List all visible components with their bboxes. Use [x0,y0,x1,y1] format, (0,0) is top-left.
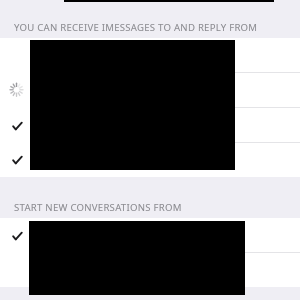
other: Verifying [6,80,28,102]
button[interactable]: Address verifying [0,73,300,108]
button[interactable]: Apple ID address [0,38,300,73]
button[interactable]: Email address [0,253,300,287]
other: Enabled [6,225,28,247]
staticText: YOU CAN RECEIVE IMESSAGES TO AND REPLY F… [14,21,258,34]
button[interactable]: Phone number, enabled [0,143,300,177]
other: Enabled [6,115,28,137]
staticText: START NEW CONVERSATIONS FROM [14,201,182,214]
button[interactable]: Email address, enabled [0,108,300,143]
button[interactable]: Phone number, selected [0,218,300,253]
other: Enabled [6,149,28,171]
